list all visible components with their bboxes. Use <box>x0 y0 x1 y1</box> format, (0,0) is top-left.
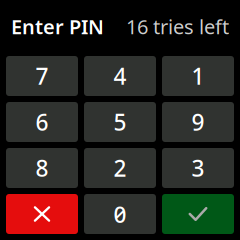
staticText: 7 <box>35 61 48 91</box>
button[interactable]: 0 <box>84 194 156 234</box>
staticText: 1 <box>191 61 204 91</box>
staticText: 16 tries left <box>126 13 229 40</box>
staticText: 9 <box>191 107 204 137</box>
staticText: 0 <box>113 199 126 229</box>
staticText: 5 <box>113 107 126 137</box>
button[interactable]: 5 <box>84 102 156 142</box>
button[interactable]: 3 <box>162 148 234 188</box>
button[interactable]: 4 <box>84 56 156 96</box>
button[interactable]: 1 <box>162 56 234 96</box>
staticText: 3 <box>191 153 204 183</box>
staticText: Enter PIN <box>11 13 104 40</box>
staticText: 2 <box>113 153 126 183</box>
button[interactable]: 2 <box>84 148 156 188</box>
staticText: 6 <box>35 107 48 137</box>
button[interactable]: Confirm <box>162 194 234 234</box>
staticText: 8 <box>35 153 48 183</box>
button[interactable]: Cancel <box>6 194 78 234</box>
button[interactable]: 8 <box>6 148 78 188</box>
staticText: 4 <box>113 61 126 91</box>
button[interactable]: 9 <box>162 102 234 142</box>
button[interactable]: 6 <box>6 102 78 142</box>
button[interactable]: 7 <box>6 56 78 96</box>
